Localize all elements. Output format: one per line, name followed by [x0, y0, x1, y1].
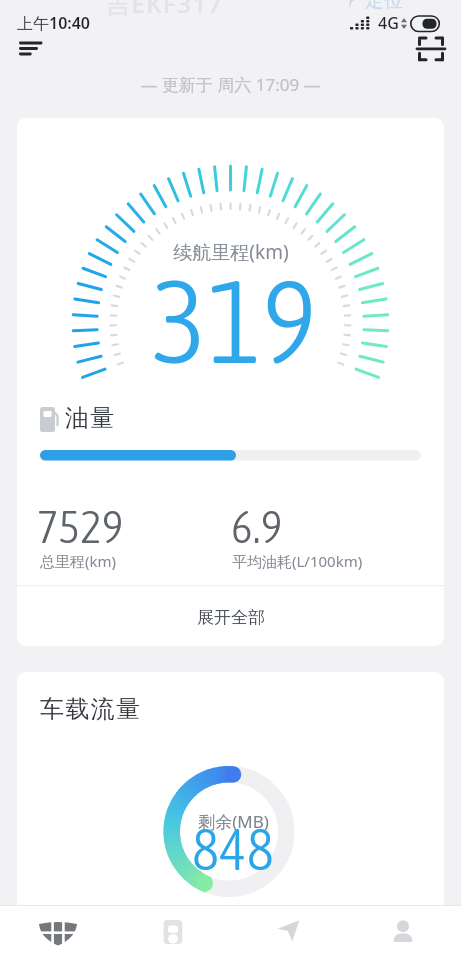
- staticText: 续航里程(km): [173, 239, 289, 265]
- button[interactable]: [10, 33, 52, 63]
- staticText: 总里程(km): [40, 551, 117, 571]
- staticText: 油量: [65, 403, 116, 433]
- staticText: 平均油耗(L/100km): [232, 551, 363, 571]
- button[interactable]: [145, 905, 201, 960]
- staticText: 车载流量: [40, 694, 142, 724]
- button[interactable]: [412, 35, 452, 67]
- staticText: 吉EKF317: [106, 0, 223, 20]
- staticText: 剩余(MB): [198, 810, 269, 832]
- staticText: 上午10:40: [17, 12, 91, 34]
- staticText: 定位: [365, 0, 403, 13]
- staticText: 848: [192, 816, 274, 872]
- staticText: 4G: [378, 12, 399, 34]
- button[interactable]: [260, 905, 316, 960]
- button[interactable]: [90, 0, 250, 22]
- staticText: — 更新于 周六 17:09 —: [140, 73, 321, 96]
- button[interactable]: [336, 0, 416, 18]
- button[interactable]: 展开全部: [17, 589, 444, 646]
- button[interactable]: [375, 905, 431, 960]
- button[interactable]: [30, 905, 86, 960]
- staticText: 6.9: [231, 500, 283, 548]
- staticText: 7529: [37, 500, 124, 548]
- staticText: 319: [152, 254, 317, 384]
- staticText: 展开全部: [197, 607, 265, 628]
